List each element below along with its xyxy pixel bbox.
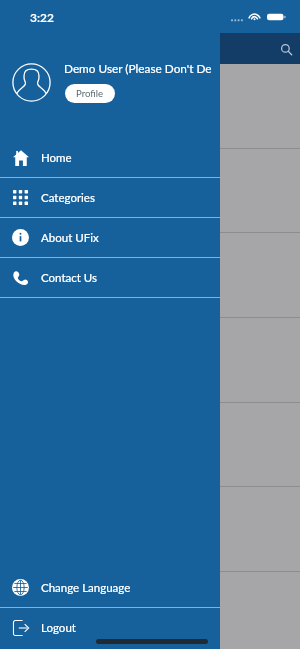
button[interactable] [0, 572, 300, 649]
button[interactable]: Profile [65, 84, 115, 103]
staticText: Categories [41, 191, 95, 205]
button[interactable]: About UFix [0, 218, 220, 257]
button[interactable]: Categories [0, 178, 220, 217]
button[interactable] [0, 318, 300, 402]
staticText: Contact Us [41, 271, 97, 285]
button[interactable]: Search [272, 35, 300, 63]
staticText: About UFix [41, 231, 99, 245]
button[interactable] [0, 233, 300, 317]
staticText: Home [41, 151, 72, 165]
staticText: Profile [76, 88, 104, 100]
button[interactable] [0, 64, 300, 148]
button[interactable] [0, 403, 300, 487]
button[interactable]: Home [0, 138, 220, 177]
staticText: Demo User (Please Don't De [64, 61, 212, 75]
button[interactable]: Contact Us [0, 258, 220, 297]
staticText: 3:22 [30, 10, 54, 24]
staticText: Logout [41, 621, 76, 635]
button[interactable]: Change Language [0, 568, 220, 607]
staticText: Change Language [41, 581, 131, 595]
button[interactable]: Logout [0, 608, 220, 647]
button[interactable] [0, 149, 300, 233]
button[interactable] [0, 487, 300, 571]
